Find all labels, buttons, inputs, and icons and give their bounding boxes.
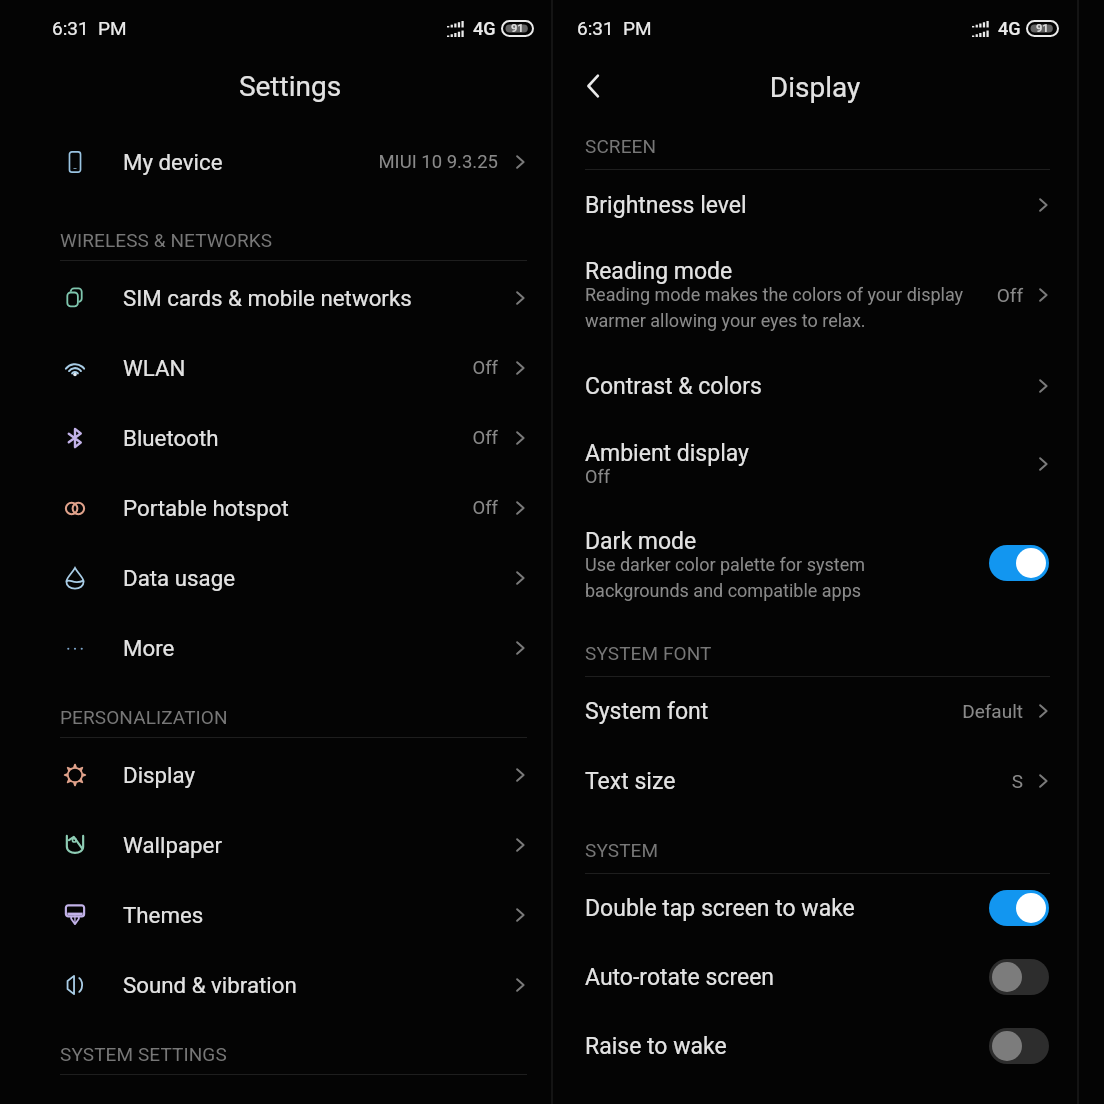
staticText: Auto-rotate screen <box>585 964 775 991</box>
staticText: WLAN <box>123 355 186 381</box>
button[interactable]: Turn on Raise to wake <box>989 1028 1049 1064</box>
button[interactable]: Double tap screen to wake <box>553 886 1077 930</box>
staticText: Default <box>843 700 1023 722</box>
staticText: 6:31 PM <box>577 17 652 39</box>
staticText: SYSTEM <box>585 839 659 861</box>
staticText: 91 <box>1036 22 1049 35</box>
button[interactable]: Ambient display <box>553 431 1077 521</box>
staticText: Bluetooth <box>123 425 219 451</box>
staticText: S <box>843 770 1023 792</box>
staticText: 6:31 PM <box>52 17 127 39</box>
staticText: Contrast & colors <box>585 373 762 400</box>
staticText: SYSTEM SETTINGS <box>60 1043 227 1065</box>
button[interactable]: Dark mode <box>553 519 1077 609</box>
button[interactable]: WLAN <box>28 333 552 403</box>
staticText: Ambient display <box>585 440 749 467</box>
button[interactable]: Turn off Double tap screen to wake <box>989 890 1049 926</box>
staticText: Off <box>290 497 498 519</box>
button[interactable]: Text size <box>553 759 1077 803</box>
staticText: Themes <box>123 902 204 928</box>
button[interactable]: Bluetooth <box>28 403 552 473</box>
staticText: Raise to wake <box>585 1033 727 1060</box>
button[interactable]: Turn on Auto-rotate screen <box>989 959 1049 995</box>
staticText: SCREEN <box>585 135 657 157</box>
button[interactable]: Sound & vibration <box>28 950 552 1020</box>
staticText: PERSONALIZATION <box>60 706 228 728</box>
staticText: Off <box>843 284 1023 306</box>
staticText: Portable hotspot <box>123 495 289 521</box>
button[interactable]: System font <box>553 689 1077 733</box>
staticText: Text size <box>585 768 676 795</box>
button[interactable]: Brightness level <box>553 183 1077 227</box>
button[interactable]: Data usage <box>28 543 552 613</box>
staticText: Use darker color palette for system back… <box>585 554 865 601</box>
staticText: Off <box>290 357 498 379</box>
staticText: Data usage <box>123 565 235 591</box>
staticText: SIM cards & mobile networks <box>123 285 412 311</box>
staticText: Sound & vibration <box>123 972 297 998</box>
button[interactable]: More <box>28 613 552 683</box>
button[interactable]: Themes <box>28 880 552 950</box>
staticText: Reading mode <box>585 258 733 285</box>
staticText: Brightness level <box>585 192 747 219</box>
staticText: More <box>123 635 175 661</box>
staticText: My device <box>123 149 223 175</box>
staticText: Dark mode <box>585 528 697 555</box>
staticText: 4G <box>998 18 1021 39</box>
button[interactable]: SIM cards & mobile networks <box>28 263 552 333</box>
staticText: SYSTEM FONT <box>585 642 712 664</box>
staticText: Display <box>123 762 196 788</box>
staticText: Off <box>585 466 610 487</box>
staticText: Double tap screen to wake <box>585 895 855 922</box>
staticText: MIUI 10 9.3.25 <box>290 151 498 173</box>
button[interactable]: Raise to wake <box>553 1024 1077 1068</box>
staticText: Display <box>553 71 1077 104</box>
staticText: Wallpaper <box>123 832 222 858</box>
staticText: System font <box>585 698 709 725</box>
staticText: 4G <box>473 18 496 39</box>
staticText: Off <box>290 427 498 449</box>
button[interactable]: Contrast & colors <box>553 364 1077 408</box>
button[interactable]: Back <box>571 63 617 109</box>
button[interactable]: Auto-rotate screen <box>553 955 1077 999</box>
staticText: 91 <box>511 22 524 35</box>
staticText: Settings <box>28 70 552 103</box>
button[interactable]: Turn off Dark mode <box>989 545 1049 581</box>
button[interactable]: Wallpaper <box>28 810 552 880</box>
button[interactable]: Display <box>28 740 552 810</box>
button[interactable]: My device <box>28 127 552 197</box>
button[interactable]: Reading mode <box>553 249 1077 339</box>
staticText: WIRELESS & NETWORKS <box>60 229 273 251</box>
button[interactable]: Portable hotspot <box>28 473 552 543</box>
staticText: Reading mode makes the colors of your di… <box>585 284 964 331</box>
